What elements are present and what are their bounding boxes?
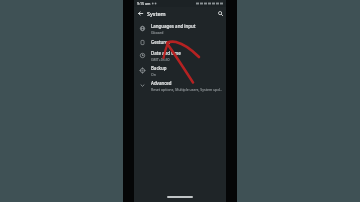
button[interactable]: Gestures [134, 36, 226, 48]
staticText: 9:15 am [137, 1, 151, 6]
button[interactable]: Advanced [134, 78, 226, 93]
staticText: System [147, 10, 166, 17]
staticText: Date and time [151, 50, 181, 56]
button[interactable]: Date and time [134, 48, 226, 63]
staticText: On [151, 72, 156, 77]
staticText: Languages and input [151, 23, 196, 29]
button[interactable]: Languages and input [134, 21, 226, 36]
staticText: Gestures [151, 39, 170, 45]
staticText: Gboard [151, 30, 164, 35]
button[interactable]: Backup [134, 63, 226, 78]
button[interactable]: Back [135, 8, 145, 18]
button[interactable]: Search [215, 8, 225, 18]
staticText: Backup [151, 65, 167, 71]
staticText: Advanced [151, 80, 172, 86]
staticText: Reset options, Multiple users, System up… [151, 87, 223, 92]
staticText: GMT+05:30 [151, 57, 170, 62]
